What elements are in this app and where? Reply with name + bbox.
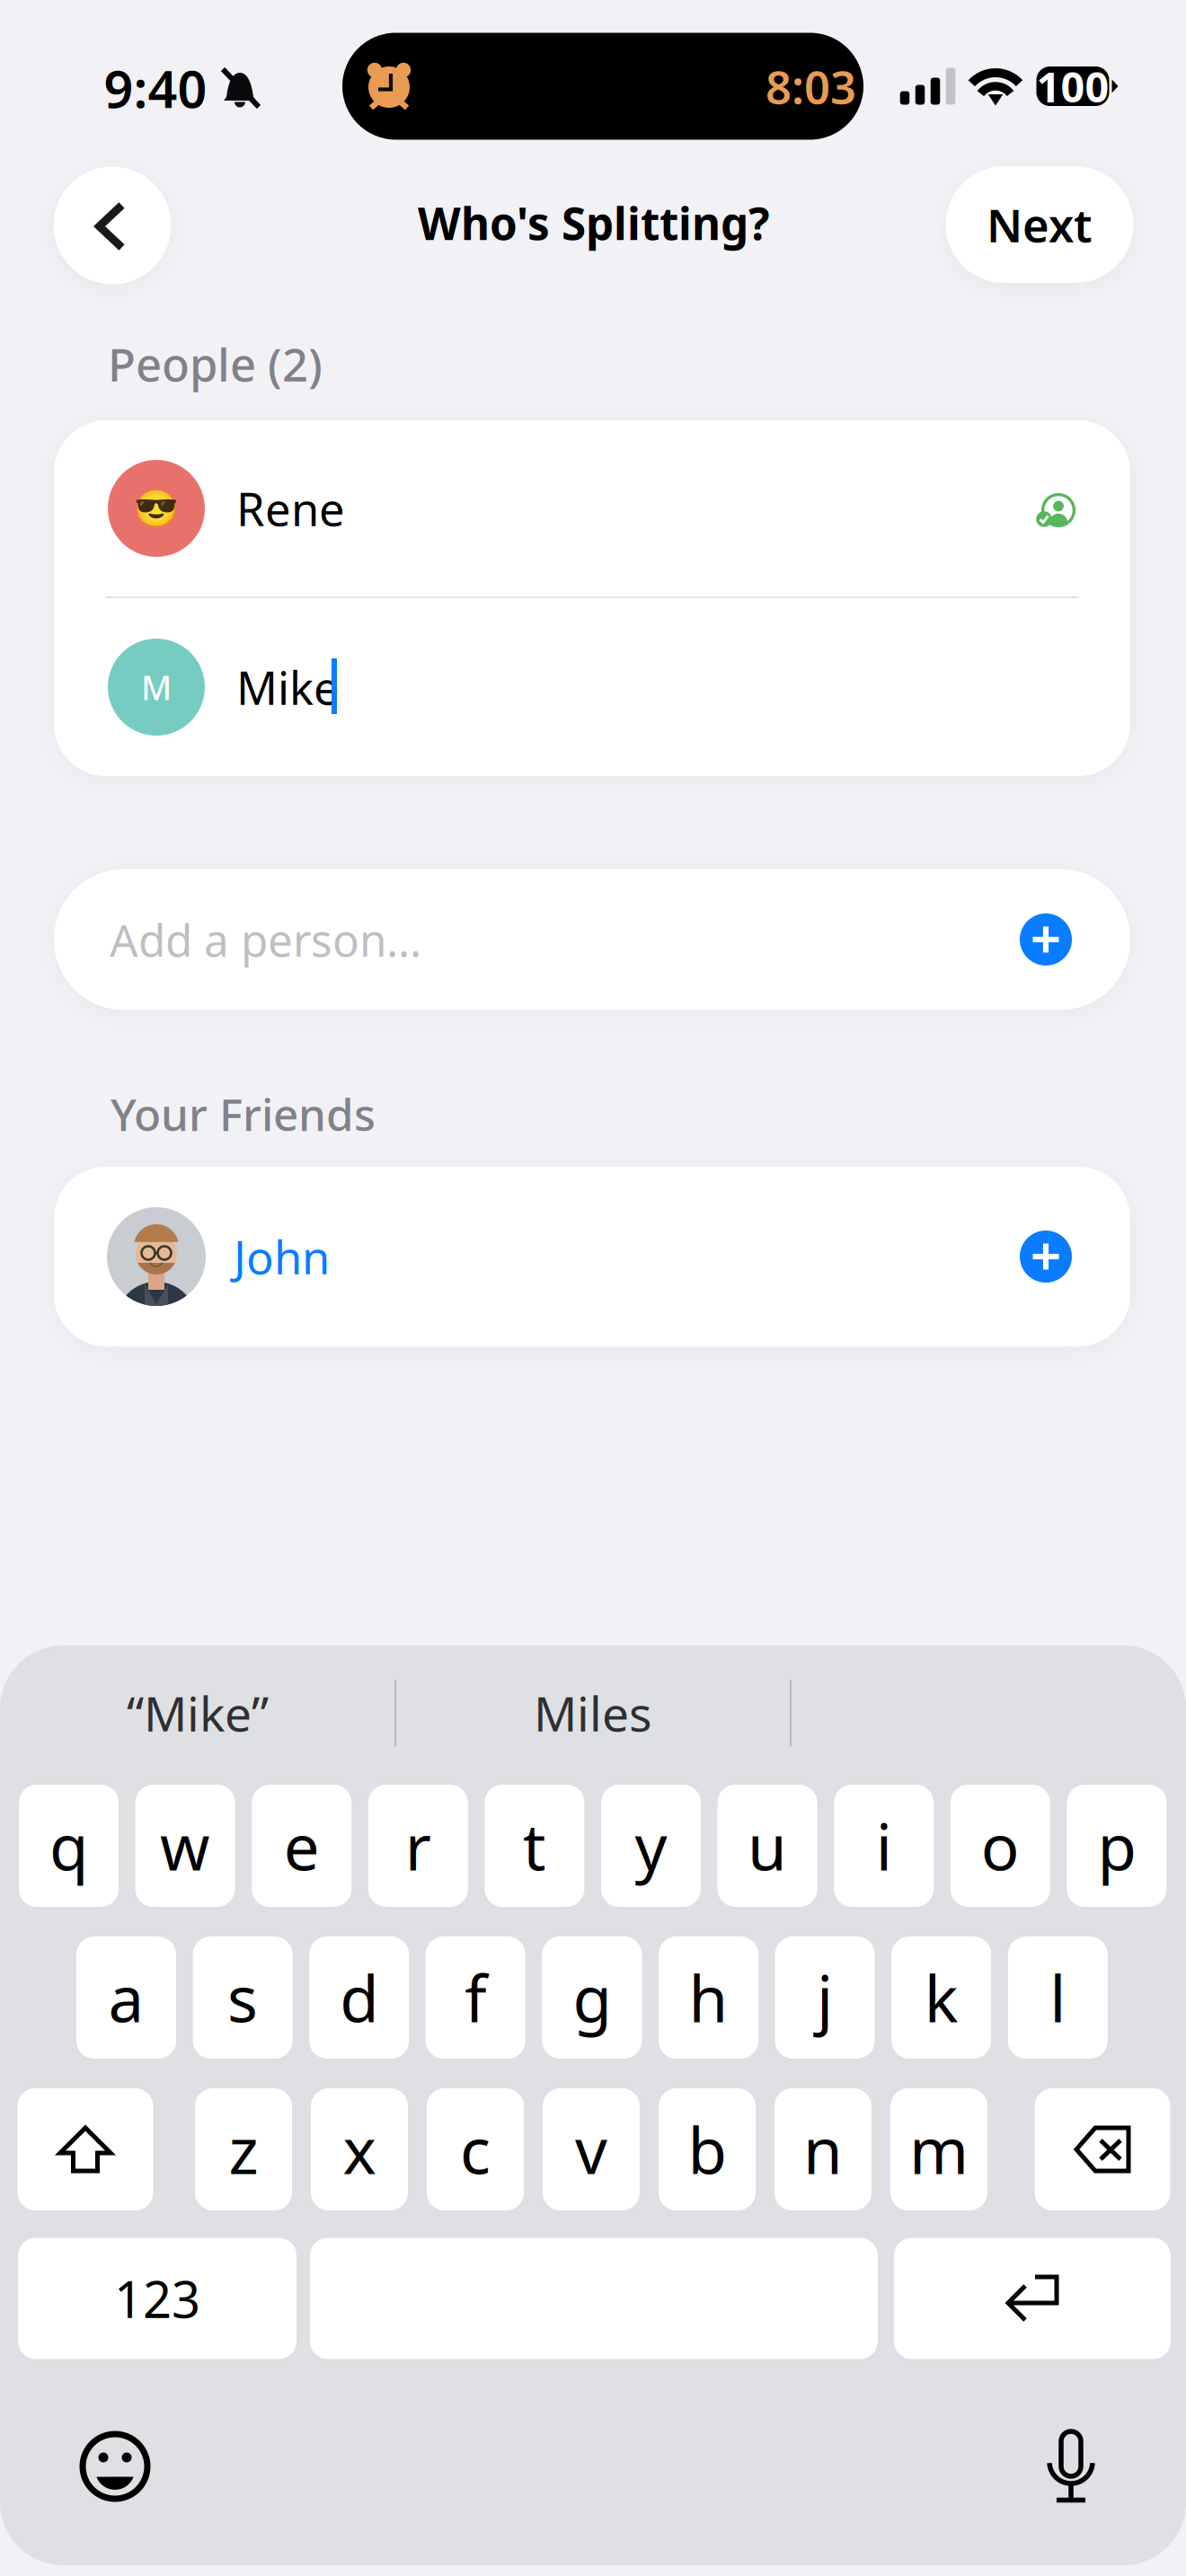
button[interactable]: Emoji keyboard bbox=[79, 2430, 151, 2502]
button[interactable]: John bbox=[54, 1167, 1130, 1346]
staticText: People (2) bbox=[108, 334, 323, 394]
button[interactable]: t bbox=[485, 1785, 584, 1907]
staticText: t bbox=[523, 1804, 546, 1888]
staticText: 100 bbox=[1036, 58, 1109, 114]
staticText: f bbox=[465, 1955, 486, 2040]
button[interactable]: v bbox=[543, 2088, 640, 2210]
button[interactable]: d bbox=[309, 1936, 409, 2059]
staticText: c bbox=[460, 2107, 491, 2191]
staticText: x bbox=[343, 2107, 376, 2191]
button[interactable]: w bbox=[135, 1785, 235, 1907]
button[interactable]: e bbox=[252, 1785, 351, 1907]
staticText: 9:40 bbox=[104, 54, 207, 122]
staticText: m bbox=[909, 2107, 969, 2191]
button[interactable]: o bbox=[950, 1785, 1050, 1907]
staticText: 😎 bbox=[134, 488, 179, 529]
staticText: n bbox=[803, 2107, 843, 2191]
staticText: Add a person... bbox=[110, 910, 421, 969]
staticText: z bbox=[229, 2107, 258, 2191]
staticText: 123 bbox=[114, 2265, 200, 2332]
button[interactable]: m bbox=[890, 2088, 987, 2210]
button[interactable]: a bbox=[76, 1936, 176, 2059]
staticText: Mike bbox=[236, 657, 340, 717]
staticText: Who's Splitting? bbox=[418, 193, 770, 252]
staticText: r bbox=[405, 1804, 431, 1888]
button[interactable]: 123 bbox=[18, 2238, 296, 2359]
button[interactable]: Add person bbox=[1020, 913, 1072, 966]
staticText: h bbox=[689, 1955, 728, 2040]
staticText: Your Friends bbox=[111, 1084, 376, 1143]
staticText: y bbox=[635, 1804, 667, 1888]
staticText: John bbox=[234, 1226, 330, 1287]
staticText: a bbox=[108, 1955, 144, 2040]
staticText: p bbox=[1097, 1804, 1136, 1888]
button[interactable]: s bbox=[193, 1936, 293, 2059]
button[interactable]: Next bbox=[946, 166, 1133, 283]
button[interactable]: r bbox=[368, 1785, 468, 1907]
staticText: s bbox=[227, 1955, 258, 2040]
button[interactable]: z bbox=[195, 2088, 292, 2210]
button[interactable]: h bbox=[659, 1936, 758, 2059]
staticText: 8:03 bbox=[766, 56, 856, 116]
button[interactable]: x bbox=[311, 2088, 408, 2210]
button[interactable]: y bbox=[601, 1785, 701, 1907]
button[interactable]: Back bbox=[53, 167, 171, 284]
staticText: “Mike” bbox=[127, 1681, 269, 1745]
button[interactable]: Shift bbox=[18, 2088, 153, 2210]
staticText: j bbox=[817, 1955, 833, 2040]
button[interactable]: Delete bbox=[1035, 2088, 1170, 2210]
staticText: g bbox=[573, 1955, 611, 2040]
button[interactable]: k bbox=[891, 1936, 991, 2059]
staticText: i bbox=[876, 1804, 892, 1888]
staticText: u bbox=[748, 1804, 787, 1888]
staticText: v bbox=[575, 2107, 607, 2191]
staticText: q bbox=[49, 1804, 88, 1888]
button[interactable]: f bbox=[426, 1936, 525, 2059]
staticText: d bbox=[340, 1955, 378, 2040]
staticText: Next bbox=[987, 194, 1093, 255]
staticText: M bbox=[141, 665, 172, 709]
staticText: b bbox=[688, 2107, 726, 2191]
staticText: w bbox=[160, 1804, 210, 1888]
button[interactable]: n bbox=[774, 2088, 872, 2210]
button[interactable]: j bbox=[775, 1936, 875, 2059]
button[interactable]: p bbox=[1067, 1785, 1167, 1907]
staticText: l bbox=[1050, 1955, 1066, 2040]
staticText: Rene bbox=[236, 478, 345, 539]
button[interactable]: c bbox=[427, 2088, 524, 2210]
staticText: k bbox=[924, 1955, 958, 2040]
button[interactable]: Return bbox=[894, 2238, 1171, 2359]
staticText: e bbox=[284, 1804, 320, 1888]
button[interactable]: g bbox=[542, 1936, 642, 2059]
button[interactable]: u bbox=[718, 1785, 817, 1907]
button[interactable]: q bbox=[19, 1785, 119, 1907]
button[interactable]: l bbox=[1008, 1936, 1108, 2059]
staticText: o bbox=[981, 1804, 1020, 1888]
staticText: Miles bbox=[534, 1681, 652, 1745]
button[interactable]: Dictation bbox=[1046, 2427, 1096, 2504]
button[interactable]: i bbox=[834, 1785, 934, 1907]
button[interactable]: b bbox=[659, 2088, 756, 2210]
